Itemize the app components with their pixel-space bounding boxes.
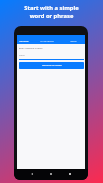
- button[interactable]: GENERATE: [17, 35, 31, 44]
- staticText: GENERATE: [19, 40, 29, 43]
- button[interactable]: MY KEYWORDS: [34, 35, 60, 44]
- staticText: Game: [19, 54, 25, 57]
- staticText: Start with a simple word or phrase: [0, 4, 103, 19]
- staticText: GENERATE KEYWORDS: [42, 64, 62, 67]
- staticText: Enter a keyword to begin: [19, 47, 43, 50]
- button[interactable]: ABOUT: [60, 35, 86, 44]
- other: Back: [31, 173, 33, 175]
- staticText: ABOUT: [70, 40, 77, 43]
- staticText: MY KEYWORDS: [40, 40, 54, 43]
- button[interactable]: GENERATE KEYWORDS: [19, 62, 84, 69]
